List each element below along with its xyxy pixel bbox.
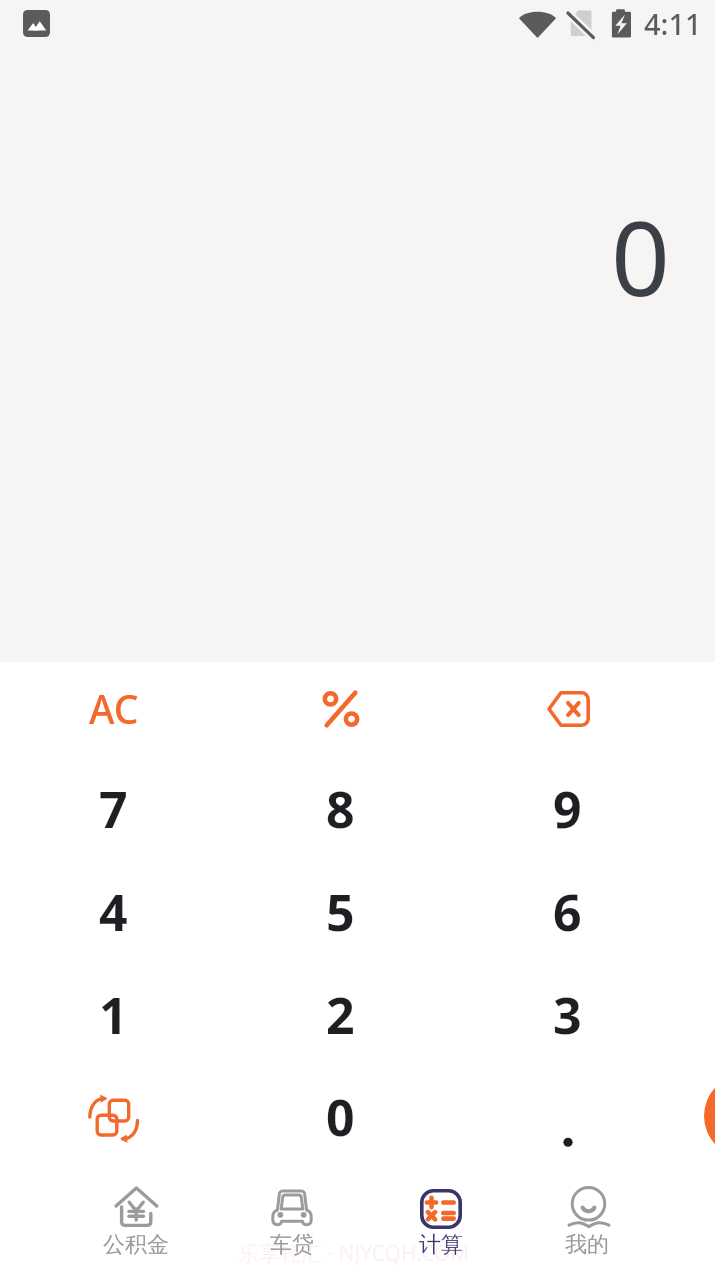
button[interactable]: 车贷 bbox=[220, 1180, 364, 1275]
button[interactable]: Percent bbox=[227, 657, 454, 760]
button[interactable]: 我的 bbox=[515, 1180, 659, 1275]
button[interactable]: 公积金 bbox=[64, 1180, 208, 1275]
button[interactable]: 7 bbox=[0, 759, 227, 862]
staticText: 我的 bbox=[565, 1231, 609, 1259]
staticText: 0 bbox=[611, 186, 670, 326]
button[interactable]: 2 bbox=[227, 965, 454, 1068]
staticText: 2 bbox=[326, 981, 355, 1049]
staticText: 6 bbox=[553, 878, 582, 946]
staticText: 3 bbox=[553, 981, 582, 1049]
other: Equals bbox=[0, 0, 715, 1275]
staticText: 4 bbox=[99, 878, 128, 946]
button[interactable]: 8 bbox=[227, 759, 454, 862]
button[interactable]: 6 bbox=[454, 862, 681, 965]
staticText: 8 bbox=[326, 775, 355, 843]
button[interactable]: 0 bbox=[227, 1067, 454, 1170]
staticText: 乐享轻汇 · NJYCQH.COM bbox=[238, 1239, 470, 1268]
staticText: 车贷 bbox=[270, 1231, 314, 1259]
staticText: 计算 bbox=[419, 1231, 463, 1259]
staticText: 4:11 bbox=[644, 4, 702, 43]
button[interactable]: 9 bbox=[454, 759, 681, 862]
other: Backspace bbox=[546, 691, 590, 727]
staticText: 0 bbox=[326, 1083, 355, 1151]
other: Swap bbox=[88, 1095, 140, 1143]
other: Percent bbox=[324, 691, 358, 727]
staticText: 1 bbox=[99, 981, 128, 1049]
button[interactable] bbox=[454, 1067, 681, 1170]
button[interactable]: 1 bbox=[0, 965, 227, 1068]
button[interactable]: 5 bbox=[227, 862, 454, 965]
button[interactable]: Swap bbox=[0, 1067, 227, 1170]
button[interactable]: 计算 bbox=[369, 1180, 513, 1275]
button[interactable]: Backspace bbox=[454, 657, 681, 760]
staticText: 7 bbox=[99, 775, 128, 843]
staticText: 9 bbox=[553, 775, 582, 843]
button[interactable]: 3 bbox=[454, 965, 681, 1068]
staticText: 5 bbox=[326, 878, 355, 946]
staticText: AC bbox=[89, 682, 139, 735]
button[interactable]: AC bbox=[0, 657, 227, 760]
button[interactable]: 4 bbox=[0, 862, 227, 965]
staticText: 公积金 bbox=[103, 1231, 169, 1259]
